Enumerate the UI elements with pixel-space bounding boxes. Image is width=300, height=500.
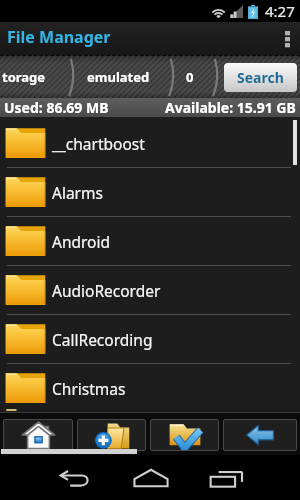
staticText: Search <box>237 68 284 87</box>
button[interactable]: Select all <box>150 419 219 451</box>
button[interactable]: Alarms <box>0 168 300 216</box>
button[interactable]: Recent apps <box>204 456 248 500</box>
button[interactable]: AudioRecorder <box>0 266 300 314</box>
staticText: torage <box>2 68 46 86</box>
staticText: Available: 15.91 GB <box>165 98 296 117</box>
staticText: 4:27 <box>265 1 295 21</box>
staticText: emulated <box>87 68 150 86</box>
button[interactable]: 0 <box>174 56 206 98</box>
button[interactable]: torage <box>0 56 62 98</box>
button[interactable]: Home <box>129 456 173 500</box>
button[interactable]: New folder <box>77 419 146 451</box>
staticText: 0 <box>186 68 194 86</box>
staticText: File Manager <box>7 26 111 48</box>
button[interactable]: More options <box>276 22 300 56</box>
staticText: Alarms <box>52 182 103 203</box>
staticText: AudioRecorder <box>52 280 161 301</box>
staticText: __chartboost <box>52 133 145 154</box>
button[interactable]: Home <box>3 419 73 451</box>
staticText: Used: 86.69 MB <box>4 98 109 117</box>
button[interactable]: Christmas <box>0 364 300 412</box>
button[interactable]: emulated <box>74 56 162 98</box>
staticText: Christmas <box>52 378 126 399</box>
button[interactable]: CallRecording <box>0 315 300 363</box>
staticText: Android <box>52 231 111 252</box>
button[interactable]: Android <box>0 217 300 265</box>
button[interactable]: Back <box>53 456 97 500</box>
staticText: CallRecording <box>52 329 153 350</box>
button[interactable]: Search <box>224 63 297 92</box>
button[interactable]: Back <box>223 419 297 451</box>
button[interactable]: __chartboost <box>0 119 300 167</box>
